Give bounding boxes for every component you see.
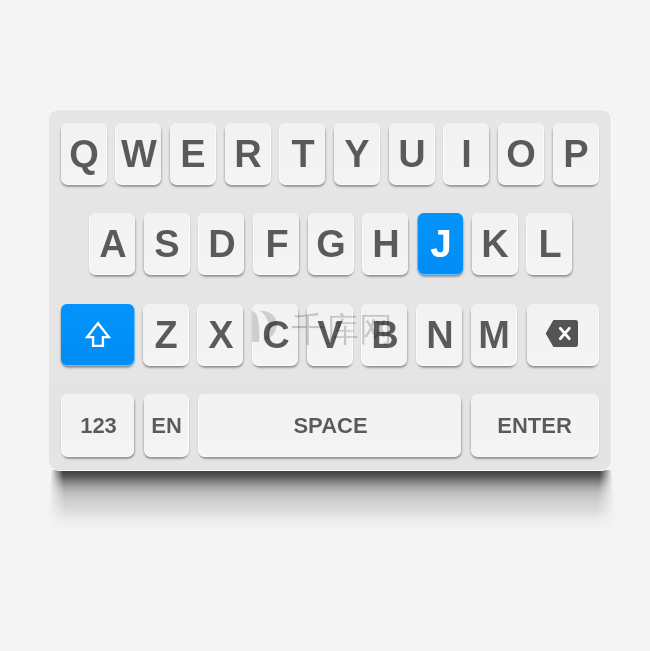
button[interactable]: P [553, 123, 598, 184]
button[interactable]: O [498, 123, 543, 184]
button[interactable]: SPACE [199, 394, 461, 456]
staticText: I [461, 133, 472, 175]
staticText: C [262, 314, 290, 356]
staticText: G [316, 223, 346, 265]
staticText: U [398, 133, 426, 175]
button[interactable]: Y [334, 123, 379, 184]
staticText: F [265, 223, 289, 265]
button[interactable]: D [199, 213, 244, 274]
staticText: X [208, 314, 234, 356]
staticText: B [371, 314, 399, 356]
button[interactable]: ENTER [471, 394, 598, 456]
button[interactable]: T [280, 123, 325, 184]
staticText: P [563, 133, 589, 175]
button[interactable]: W [116, 123, 161, 184]
staticText: E [180, 133, 206, 175]
button[interactable]: A [90, 213, 135, 274]
button[interactable]: M [471, 304, 516, 365]
button[interactable]: Z [143, 304, 188, 365]
button[interactable]: U [389, 123, 434, 184]
button[interactable]: V [307, 304, 352, 365]
button[interactable]: X [198, 304, 243, 365]
staticText: Q [69, 133, 99, 175]
staticText: Z [154, 314, 178, 356]
button[interactable]: B [362, 304, 407, 365]
staticText: K [481, 223, 509, 265]
staticText: M [478, 314, 510, 356]
button[interactable]: Backspace [527, 304, 598, 365]
staticText: SPACE [293, 413, 368, 438]
button[interactable]: N [417, 304, 462, 365]
staticText: W [121, 133, 157, 175]
button[interactable]: G [308, 213, 353, 274]
staticText: ENTER [497, 413, 572, 438]
staticText: 千库网 [291, 308, 393, 351]
button[interactable]: Q [61, 123, 106, 184]
staticText: Y [344, 133, 370, 175]
staticText: H [372, 223, 400, 265]
staticText: N [426, 314, 454, 356]
staticText: O [506, 133, 536, 175]
button[interactable]: K [472, 213, 517, 274]
button[interactable]: H [363, 213, 408, 274]
staticText: T [291, 133, 315, 175]
button[interactable]: EN [144, 394, 188, 456]
staticText: EN [151, 413, 182, 438]
staticText: D [208, 223, 236, 265]
button[interactable]: C [253, 304, 298, 365]
button[interactable]: Shift [61, 304, 134, 365]
button[interactable]: I [444, 123, 489, 184]
staticText: S [154, 223, 180, 265]
button[interactable]: J [418, 213, 463, 274]
staticText: A [99, 223, 127, 265]
staticText: J [430, 223, 452, 265]
button[interactable]: R [225, 123, 270, 184]
button[interactable]: 123 [62, 394, 134, 456]
staticText: 123 [80, 413, 117, 438]
staticText: L [538, 223, 562, 265]
button[interactable]: E [170, 123, 215, 184]
staticText: R [234, 133, 262, 175]
staticText: V [317, 314, 343, 356]
button[interactable]: L [527, 213, 572, 274]
button[interactable]: S [144, 213, 189, 274]
button[interactable]: F [254, 213, 299, 274]
